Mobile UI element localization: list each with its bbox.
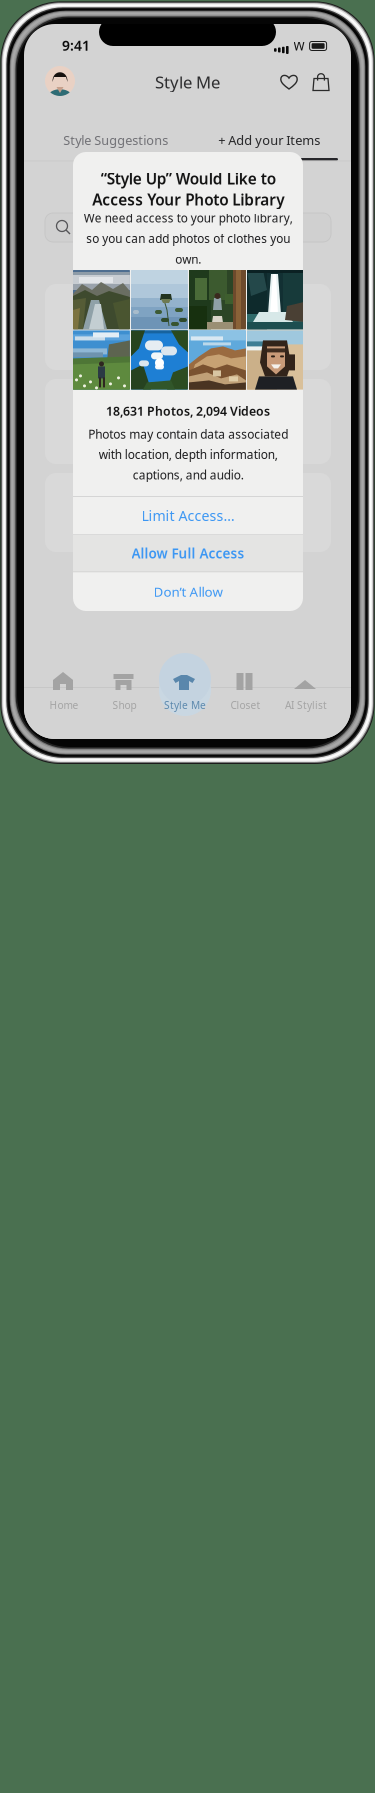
button[interactable]: + Add your Items bbox=[187, 122, 351, 158]
button[interactable]: Style Suggestions bbox=[34, 122, 197, 158]
button[interactable]: Closet bbox=[217, 667, 273, 717]
staticText: Allow Full Access bbox=[131, 544, 244, 562]
button[interactable]: Home bbox=[36, 667, 92, 717]
button[interactable]: Profile bbox=[45, 66, 75, 96]
staticText: Photos may contain data associated with … bbox=[88, 426, 288, 483]
button[interactable]: AI Stylist bbox=[278, 667, 334, 717]
staticText: Style Me bbox=[164, 698, 206, 712]
staticText: Shop bbox=[112, 698, 136, 712]
staticText: + Add your Items bbox=[218, 131, 320, 149]
button[interactable]: Don’t Allow bbox=[73, 572, 303, 611]
staticText: Limit Access… bbox=[141, 506, 234, 525]
button[interactable]: Shopping bag bbox=[313, 73, 330, 91]
staticText: W bbox=[294, 38, 305, 54]
staticText: Don’t Allow bbox=[153, 582, 222, 601]
staticText: Closet bbox=[230, 698, 260, 712]
staticText: 9:41 bbox=[62, 36, 90, 55]
button[interactable]: Favorites bbox=[280, 73, 298, 90]
button[interactable]: Limit Access… bbox=[73, 497, 303, 534]
staticText: We need access to your photo library, so… bbox=[83, 210, 292, 267]
button[interactable]: Shop bbox=[96, 667, 152, 717]
staticText: Home bbox=[49, 698, 78, 712]
staticText: Style Me bbox=[155, 71, 220, 93]
staticText: 18,631 Photos, 2,094 Videos bbox=[106, 403, 270, 419]
button[interactable]: Style Me bbox=[157, 667, 213, 717]
staticText: “Style Up” Would Like to Access Your Pho… bbox=[92, 168, 284, 210]
button[interactable]: Allow Full Access bbox=[73, 535, 303, 572]
staticText: Style Suggestions bbox=[63, 131, 168, 149]
staticText: AI Stylist bbox=[285, 698, 327, 712]
